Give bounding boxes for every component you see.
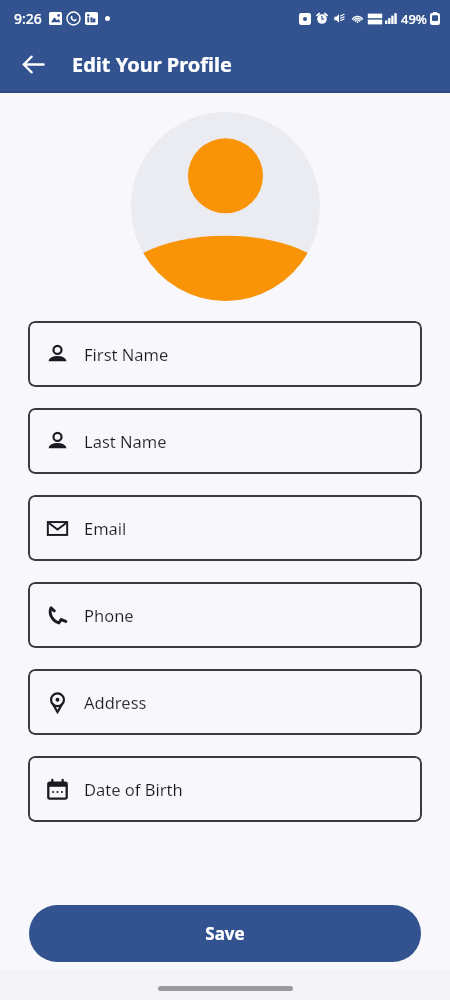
button[interactable]: Save [29,905,421,962]
staticText: Phone [84,604,134,626]
button[interactable]: Last Name [28,408,422,474]
button[interactable]: Back [12,43,54,85]
button[interactable]: Date of Birth [28,756,422,822]
button[interactable]: Address [28,669,422,735]
staticText: 49% [401,10,427,28]
staticText: Save [205,922,245,945]
button[interactable]: First Name [28,321,422,387]
staticText: Email [84,517,127,539]
button[interactable]: Phone [28,582,422,648]
button[interactable]: Profile photo [131,112,320,301]
staticText: Edit Your Profile [72,51,232,78]
button[interactable]: Email [28,495,422,561]
staticText: Date of Birth [84,778,183,800]
staticText: 9:26 [14,9,42,28]
staticText: Last Name [84,430,167,452]
staticText: First Name [84,343,169,365]
staticText: Address [84,691,147,713]
